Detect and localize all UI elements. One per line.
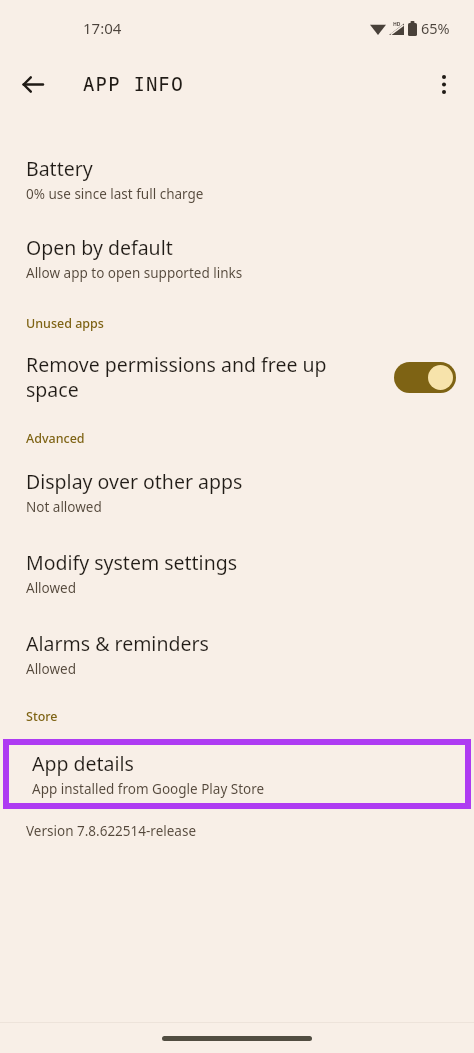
- staticText: Allowed: [26, 579, 77, 597]
- staticText: App details: [32, 750, 134, 777]
- staticText: Store: [26, 708, 58, 725]
- button[interactable]: Battery: [0, 154, 474, 204]
- staticText: 17:04: [83, 18, 122, 38]
- staticText: Unused apps: [26, 315, 104, 332]
- staticText: Advanced: [26, 430, 85, 447]
- staticText: Version 7.8.622514-release: [26, 822, 197, 840]
- staticText: Allow app to open supported links: [26, 264, 243, 282]
- button[interactable]: App details: [9, 745, 465, 803]
- staticText: Not allowed: [26, 498, 102, 516]
- staticText: 65%: [421, 18, 450, 38]
- staticText: Display over other apps: [26, 468, 243, 495]
- button[interactable]: Alarms & reminders: [0, 629, 474, 679]
- button[interactable]: Open by default: [0, 233, 474, 283]
- staticText: App installed from Google Play Store: [32, 780, 265, 798]
- button[interactable]: Remove permissions and free up space: [0, 351, 474, 403]
- staticText: 0% use since last full charge: [26, 185, 204, 203]
- staticText: Battery: [26, 155, 93, 182]
- staticText: APP INFO: [83, 71, 184, 97]
- staticText: Alarms & reminders: [26, 630, 209, 657]
- button[interactable]: More options: [422, 62, 466, 106]
- button[interactable]: Display over other apps: [0, 467, 474, 517]
- button[interactable]: Back: [10, 62, 54, 106]
- staticText: HD: [393, 21, 401, 28]
- staticText: Remove permissions and free up space: [26, 351, 376, 403]
- staticText: Open by default: [26, 234, 173, 261]
- staticText: Modify system settings: [26, 549, 238, 576]
- staticText: Allowed: [26, 660, 77, 678]
- button[interactable]: Modify system settings: [0, 548, 474, 598]
